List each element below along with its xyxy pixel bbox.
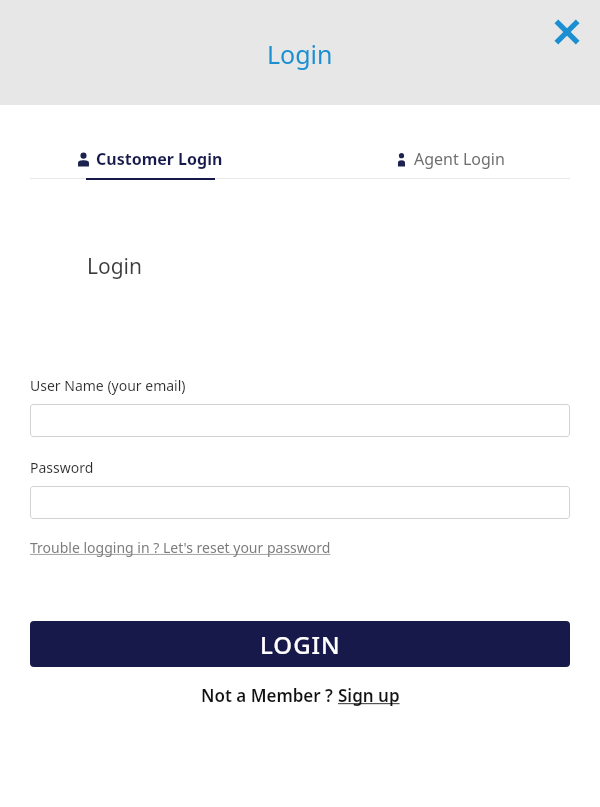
button[interactable]: User Name (your email) — [30, 404, 570, 437]
staticText: Login — [87, 252, 143, 281]
staticText: Not a Member ? — [201, 684, 338, 707]
button[interactable]: Sign up — [338, 684, 400, 707]
staticText: Agent Login — [414, 148, 505, 170]
staticText: User Name (your email) — [30, 376, 186, 395]
staticText: Password — [30, 458, 94, 477]
button[interactable]: LOGIN — [30, 621, 570, 667]
button[interactable]: Trouble logging in ? Let's reset your pa… — [30, 538, 331, 557]
staticText: LOGIN — [260, 628, 341, 661]
staticText: Trouble logging in ? Let's reset your pa… — [30, 538, 331, 557]
staticText: Customer Login — [96, 148, 223, 170]
button[interactable]: Customer Login — [0, 105, 300, 180]
button[interactable]: Password — [30, 486, 570, 519]
staticText: Sign up — [338, 684, 400, 707]
staticText: Login — [267, 37, 333, 71]
button[interactable]: Close — [546, 11, 588, 53]
